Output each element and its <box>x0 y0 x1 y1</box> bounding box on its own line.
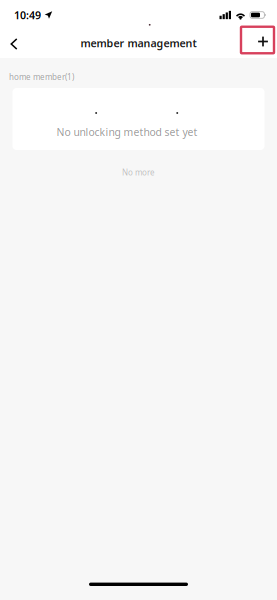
button[interactable]: Back <box>3 31 25 57</box>
staticText: No unlocking method set yet <box>56 125 197 139</box>
staticText: No more <box>122 167 155 178</box>
button[interactable]: Add member <box>241 27 274 53</box>
staticText: member management <box>80 36 196 50</box>
staticText: home member(1) <box>9 72 74 82</box>
button[interactable]: No unlocking method set yet <box>12 88 264 150</box>
staticText: 10:49 <box>14 8 41 22</box>
